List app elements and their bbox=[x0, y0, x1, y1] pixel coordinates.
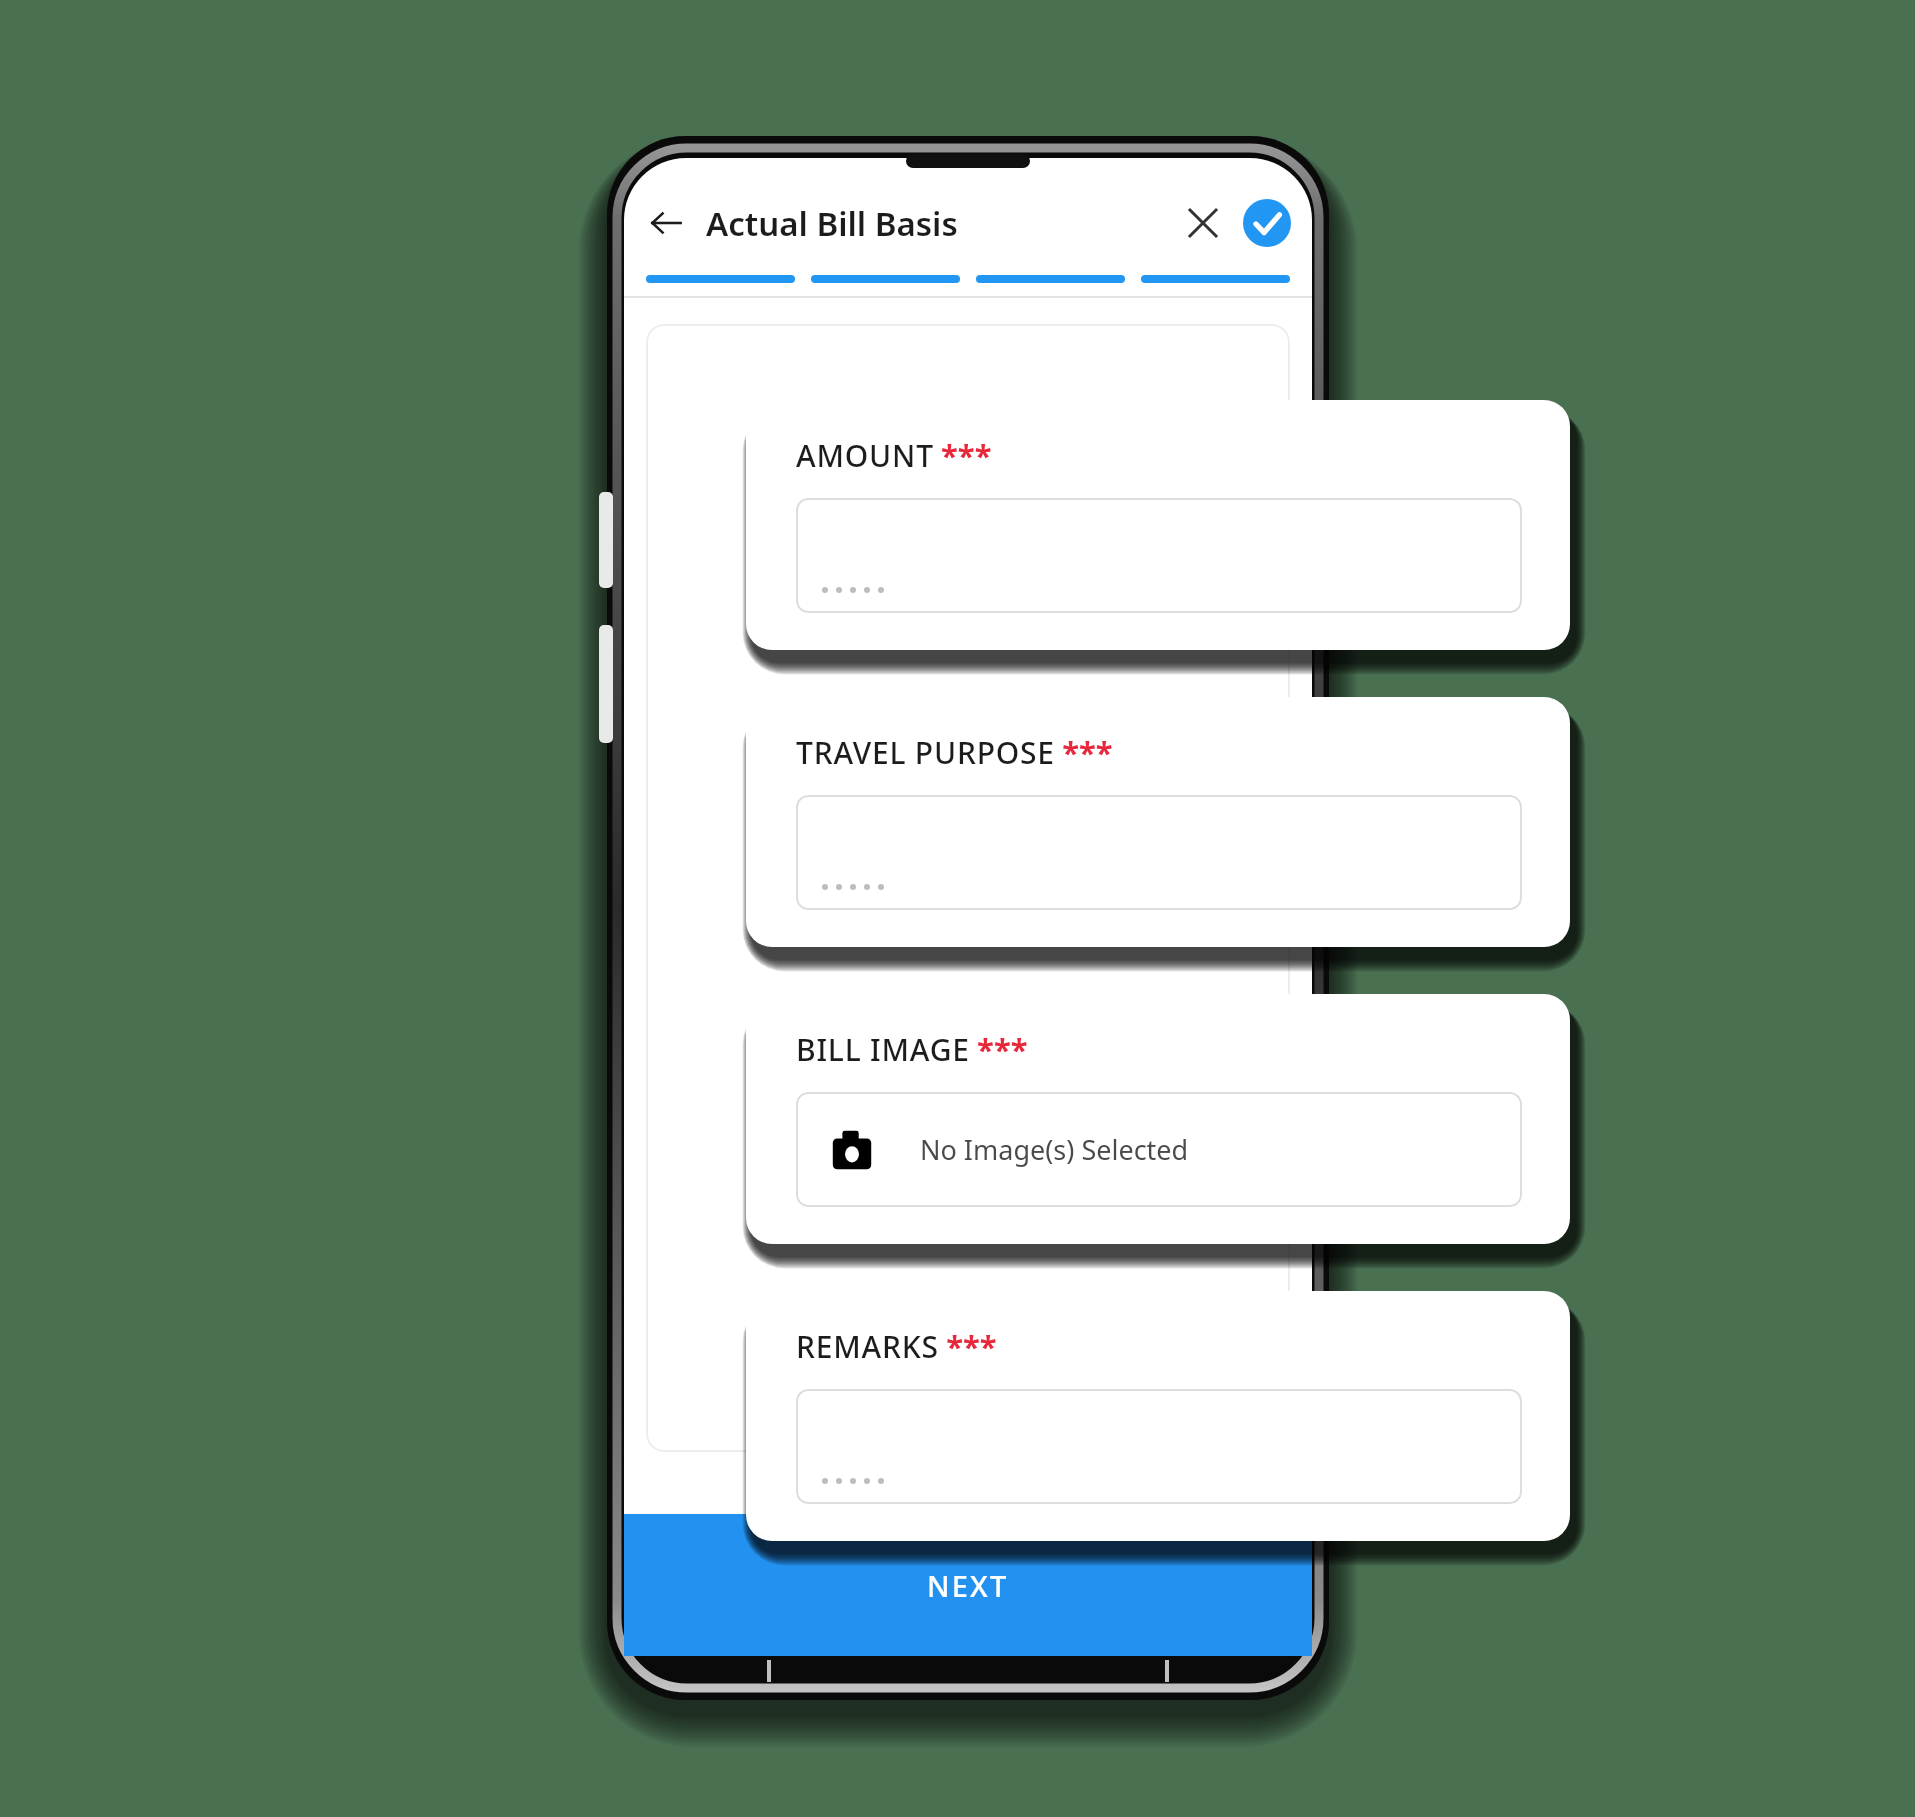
button[interactable]: NEXT bbox=[624, 1514, 1312, 1656]
button[interactable]: Confirm bbox=[1238, 194, 1296, 252]
button[interactable] bbox=[811, 275, 960, 283]
button[interactable] bbox=[976, 275, 1125, 283]
staticText: AMOUNT *** bbox=[796, 434, 992, 476]
staticText: REMARKS *** bbox=[796, 1325, 997, 1367]
button[interactable]: BILL IMAGE *** bbox=[746, 994, 1570, 1244]
button[interactable] bbox=[796, 498, 1522, 613]
staticText: NEXT bbox=[927, 1566, 1009, 1605]
staticText: BILL IMAGE *** bbox=[796, 1028, 1028, 1070]
button[interactable]: No Image(s) Selected bbox=[796, 1092, 1522, 1207]
staticText: No Image(s) Selected bbox=[920, 1131, 1189, 1168]
button[interactable]: REMARKS *** bbox=[746, 1291, 1570, 1541]
button[interactable]: TRAVEL PURPOSE *** bbox=[746, 697, 1570, 947]
button[interactable] bbox=[646, 275, 795, 283]
button[interactable] bbox=[796, 1389, 1522, 1504]
button[interactable]: Back bbox=[640, 197, 692, 249]
staticText: TRAVEL PURPOSE *** bbox=[796, 731, 1113, 773]
staticText: Actual Bill Basis bbox=[706, 201, 958, 246]
button[interactable] bbox=[1141, 275, 1290, 283]
button[interactable]: AMOUNT *** bbox=[746, 400, 1570, 650]
button[interactable] bbox=[796, 795, 1522, 910]
button[interactable]: Close bbox=[1174, 194, 1232, 252]
